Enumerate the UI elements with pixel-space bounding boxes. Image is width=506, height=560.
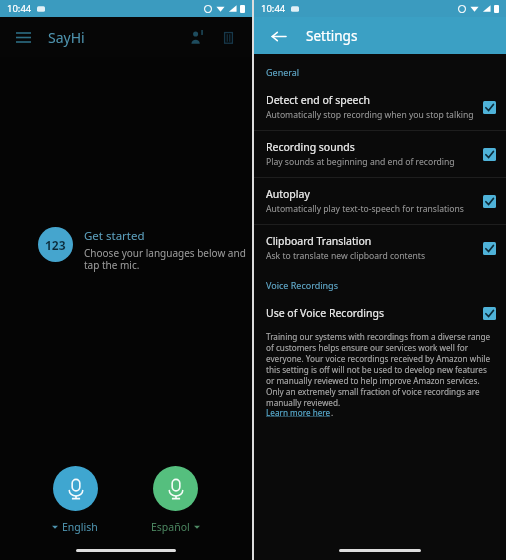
staticText: Autoplay [266,187,310,201]
button[interactable]: Toggle setting [483,307,496,320]
button[interactable]: Clipboard Translation [254,225,506,271]
button[interactable]: Toggle setting [483,148,496,161]
button[interactable]: Delete [214,23,242,51]
staticText: Automatically stop recording when you st… [266,109,474,121]
button[interactable]: Detect end of speech [254,84,506,130]
button[interactable]: Autoplay [254,178,506,224]
button[interactable]: English [52,520,98,534]
staticText: 123 [45,237,66,253]
staticText: Training our systems with recordings fro… [266,331,494,408]
button[interactable]: Español [151,520,200,534]
staticText: Use of Voice Recordings [266,306,385,320]
staticText: . [331,407,334,418]
staticText: Get started [84,228,145,244]
button[interactable]: Spanish microphone [153,466,198,511]
staticText: Automatically play text-to-speech for tr… [266,203,464,215]
button[interactable]: Recording sounds [254,131,506,177]
staticText: SayHi [48,28,85,47]
staticText: Play sounds at beginning and end of reco… [266,156,455,168]
staticText: Settings [306,27,358,45]
button[interactable]: Use of Voice Recordings [254,297,506,329]
staticText: Ask to translate new clipboard contents [266,250,426,262]
button[interactable]: Learn more here [266,407,331,418]
staticText: Español [151,520,190,534]
staticText: Choose your languages below and tap the … [84,246,246,272]
button[interactable]: Toggle setting [483,195,496,208]
staticText: 10:44 [261,2,286,15]
button[interactable]: English microphone [53,466,98,511]
staticText: English [62,520,98,534]
staticText: Voice Recordings [266,279,338,291]
staticText: Detect end of speech [266,93,371,107]
staticText: Clipboard Translation [266,234,372,248]
button[interactable]: Toggle setting [483,242,496,255]
button[interactable]: Contacts [182,23,210,51]
button[interactable]: Back [266,24,290,48]
staticText: Recording sounds [266,140,355,154]
staticText: General [266,66,300,78]
staticText: 10:44 [7,2,32,15]
button[interactable]: Toggle setting [483,101,496,114]
button[interactable]: Menu [10,24,36,50]
